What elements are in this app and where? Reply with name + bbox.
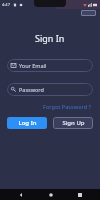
button[interactable]: Home xyxy=(46,190,55,199)
staticText: Password xyxy=(19,86,44,93)
staticText: 4:47 xyxy=(2,2,10,7)
button[interactable]: Recent apps xyxy=(75,190,84,199)
button[interactable]: Forgot Password ? xyxy=(41,102,94,111)
staticText: Your Email xyxy=(19,62,47,69)
staticText: Sign Up xyxy=(62,119,85,127)
staticText: Sign In xyxy=(35,32,65,44)
staticText: Forgot Password ? xyxy=(43,103,92,110)
button[interactable]: Log In xyxy=(7,117,47,129)
button[interactable]: Your Email xyxy=(7,59,93,72)
button[interactable]: Password xyxy=(7,83,93,96)
button[interactable]: Sign Up xyxy=(53,117,93,129)
staticText: Log In xyxy=(18,119,37,127)
button[interactable]: Back xyxy=(16,190,25,199)
